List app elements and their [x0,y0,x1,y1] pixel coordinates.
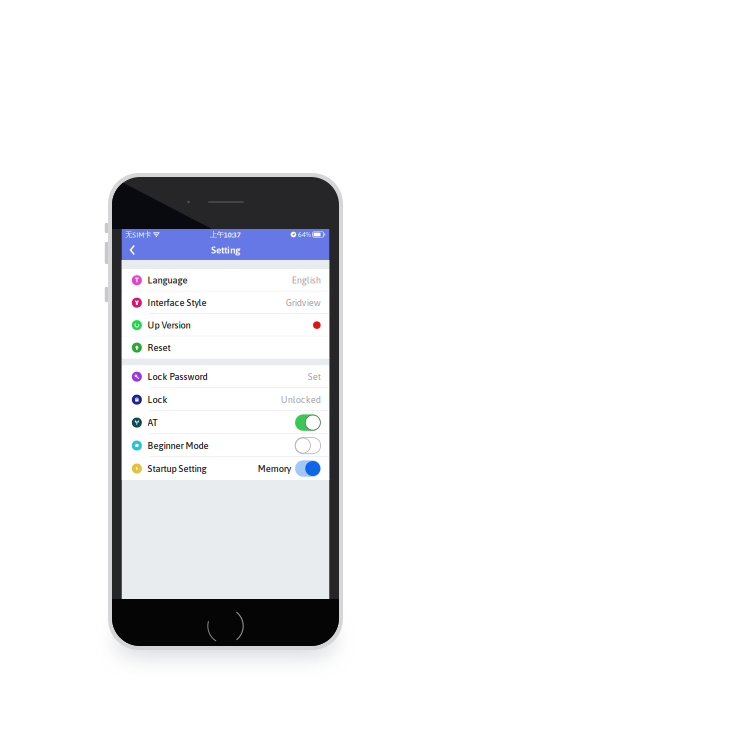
staticText: Startup Setting [147,463,206,474]
staticText: Beginner Mode [148,440,209,451]
staticText: AT [147,417,157,428]
button[interactable]: Back [122,240,145,260]
button[interactable]: Off [295,437,321,454]
staticText: Setting [211,244,240,256]
staticText: Reset [147,342,170,353]
staticText: Interface Style [147,297,206,308]
staticText: Lock Password [147,371,207,382]
staticText: 上午10:37 [210,230,241,239]
staticText: Lock [147,394,167,405]
button[interactable]: Lock [122,388,329,411]
staticText: Gridview [286,297,321,308]
button[interactable]: On [295,460,321,477]
staticText: Up Version [148,320,191,330]
button[interactable]: Startup Setting [122,457,329,480]
staticText: Set [308,371,321,382]
button[interactable]: On [295,414,321,431]
staticText: Language [147,275,187,286]
button[interactable]: Language [122,269,329,291]
staticText: Memory [258,463,291,474]
staticText: English [292,275,321,286]
button[interactable]: Beginner Mode [122,434,329,457]
button[interactable]: AT [122,411,329,434]
staticText: Unlocked [281,394,321,405]
button[interactable]: Lock Password [122,365,329,388]
button[interactable]: Up Version [122,314,329,336]
staticText: 64% [298,230,311,239]
button[interactable]: Reset [122,336,329,359]
staticText: 无SIM卡 [125,230,151,239]
button[interactable]: Interface Style [122,291,329,314]
